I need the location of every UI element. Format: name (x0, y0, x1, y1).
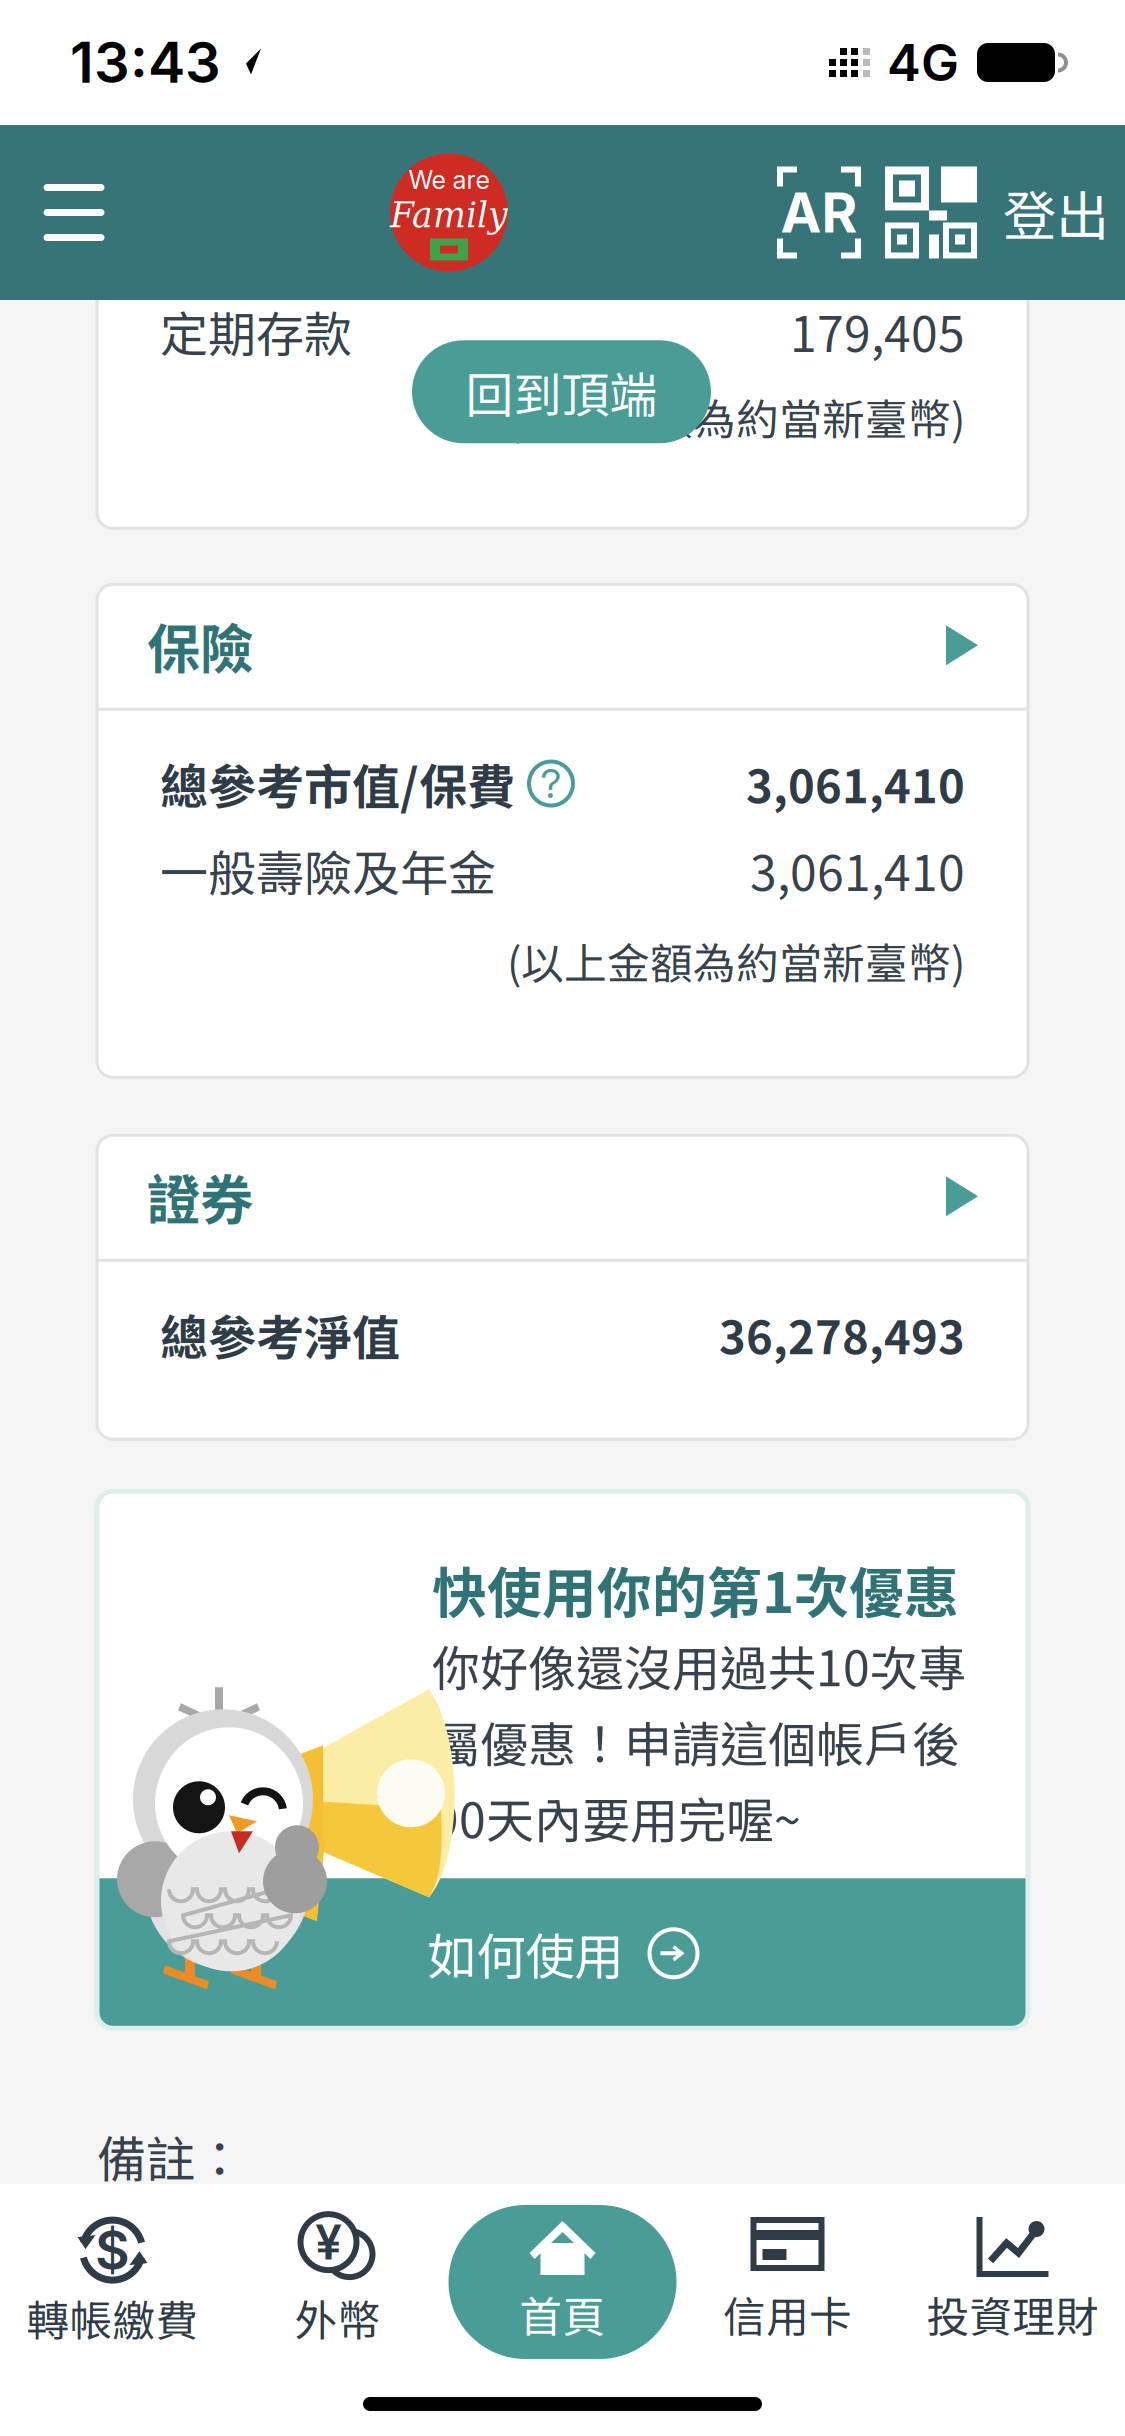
staticText: 13:43 (70, 29, 221, 96)
button[interactable]: 證券 (97, 1134, 1028, 1259)
staticText: (以上金額為約當新臺幣) (507, 386, 965, 448)
staticText: 外幣 (294, 2287, 380, 2349)
staticText: 如何使用 (427, 1918, 623, 1989)
staticText: 回到頂端 (465, 357, 657, 426)
staticText: 登出 (1003, 174, 1109, 251)
staticText: 保險 (147, 607, 253, 684)
staticText: 4G (887, 32, 959, 93)
button[interactable]: 投資理財 (900, 2184, 1125, 2380)
button[interactable]: 如何使用 (97, 1878, 1028, 2028)
staticText: 投資理財 (926, 2283, 1098, 2345)
button[interactable]: 保險 (97, 583, 1028, 708)
staticText: 90天內要用完喔~ (432, 1782, 801, 1852)
staticText: Family (390, 195, 508, 235)
staticText: 定期存款 (160, 296, 352, 366)
staticText: 179,405 (790, 296, 965, 366)
staticText: (以上金額為約當新臺幣) (507, 930, 965, 992)
staticText: 36,278,493 (719, 1302, 965, 1367)
button[interactable]: 首頁 (450, 2184, 675, 2380)
staticText: 備註： (97, 2120, 244, 2192)
staticText: 總參考淨值 (160, 1300, 400, 1369)
button[interactable]: AR (763, 125, 875, 300)
button[interactable]: $ (0, 2184, 225, 2380)
staticText: 證券 (147, 1158, 253, 1235)
button[interactable]: 登出 (987, 125, 1125, 300)
staticText: ? (540, 759, 561, 808)
staticText: 首頁 (519, 2283, 605, 2345)
button[interactable]: Menu (13, 125, 135, 300)
staticText: 一般壽險及年金 (160, 835, 496, 905)
button[interactable]: ¥ (225, 2184, 450, 2380)
staticText: AR (780, 179, 857, 245)
staticText: 快使用你的第1次優惠 (432, 1550, 959, 1629)
button[interactable]: 回到頂端 (412, 340, 711, 443)
staticText: 屬優惠！申請這個帳戶後 (432, 1706, 960, 1776)
button[interactable]: Scan QR code (875, 125, 987, 300)
button[interactable]: 信用卡 (675, 2184, 900, 2380)
staticText: 總參考市值/保費 (160, 749, 515, 818)
staticText: 信用卡 (723, 2283, 852, 2345)
staticText: 3,061,410 (746, 751, 965, 816)
staticText: 你好像還沒用過共10次專 (432, 1630, 966, 1700)
staticText: ¥ (315, 2213, 342, 2271)
staticText: 轉帳繳費 (26, 2287, 198, 2349)
staticText: 3,061,410 (750, 835, 965, 905)
staticText: We are (408, 164, 489, 195)
staticText: $ (95, 2218, 130, 2282)
